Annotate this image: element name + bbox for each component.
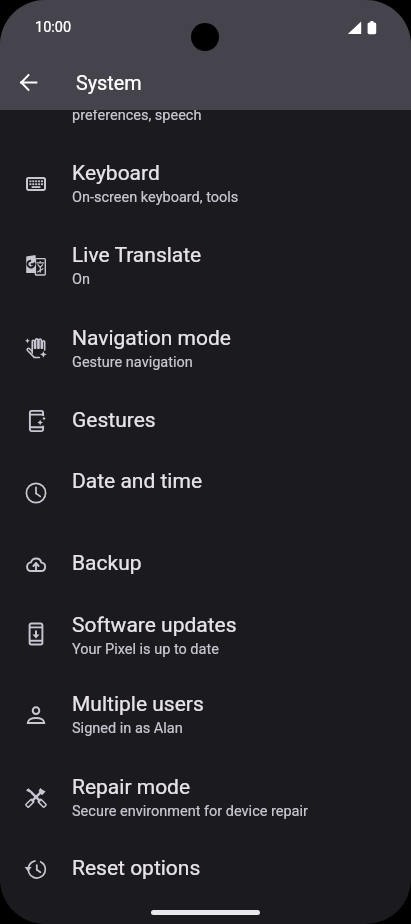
staticText: 10:00 [35,19,72,36]
button[interactable]: Navigate up [8,62,48,102]
button[interactable] [0,455,411,537]
button[interactable] [0,311,411,393]
button[interactable] [0,537,411,598]
staticText: Software updates [72,613,237,638]
staticText: Backup [72,551,142,576]
button[interactable] [0,677,411,759]
staticText: Gestures [72,408,156,433]
staticText: Languages [72,79,175,104]
staticText: Date and time [72,469,203,494]
staticText: Navigation mode [72,326,231,351]
staticText: Secure environment for device repair [72,803,308,820]
button[interactable] [0,599,411,681]
staticText: Your Pixel is up to date [72,641,219,658]
staticText: Reset options [72,856,201,881]
staticText: Gesture navigation [72,354,193,371]
staticText: preferences, speech [72,107,202,124]
staticText: Repair mode [72,775,191,800]
staticText: On [72,271,90,288]
button[interactable] [0,393,411,454]
staticText: Live Translate [72,243,202,268]
staticText: Multiple users [72,692,204,717]
button[interactable] [0,842,411,903]
button[interactable] [0,229,411,311]
button[interactable] [0,65,411,147]
button[interactable] [0,147,411,229]
staticText: System [76,72,142,95]
staticText: Signed in as Alan [72,720,183,737]
staticText: On-screen keyboard, tools [72,189,239,206]
staticText: Keyboard [72,161,160,186]
button[interactable] [0,760,411,842]
